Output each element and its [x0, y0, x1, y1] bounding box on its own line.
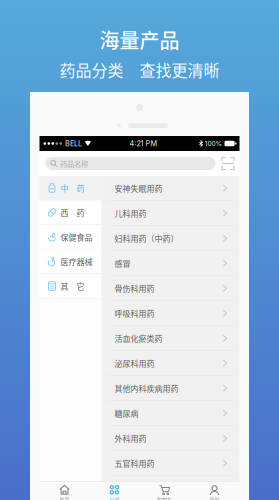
staticText: 活血化瘀类药 — [114, 332, 162, 344]
button[interactable]: 糖尿病 — [101, 401, 239, 425]
staticText: 呼吸科用药 — [114, 307, 154, 319]
button[interactable]: 我的 — [189, 481, 239, 500]
button[interactable]: Scan barcode — [217, 153, 238, 174]
button[interactable]: 安神失眠用药 — [101, 176, 239, 200]
button[interactable]: 西 药 — [39, 200, 101, 224]
staticText: BELL — [65, 139, 82, 148]
button[interactable]: 外科用药 — [101, 426, 239, 450]
staticText: 首页 — [59, 496, 69, 500]
button[interactable]: 首页 — [39, 481, 89, 500]
button[interactable]: 活血化瘀类药 — [101, 326, 239, 350]
staticText: 医疗器械 — [60, 256, 92, 267]
staticText: 药品名称 — [60, 158, 88, 169]
button[interactable]: 五官科用药 — [101, 451, 239, 475]
staticText: 药品分类 查找更清晰 — [59, 58, 219, 81]
staticText: 糖尿病 — [114, 407, 138, 419]
staticText: 购物车 — [157, 496, 172, 500]
staticText: 其他内科疾病用药 — [114, 382, 178, 394]
button[interactable]: 分类 — [89, 481, 139, 500]
staticText: 骨伤科用药 — [114, 282, 154, 294]
staticText: 其 它 — [60, 280, 84, 292]
staticText: 海量产品 — [99, 25, 179, 54]
button[interactable]: 其他内科疾病用药 — [101, 376, 239, 400]
button[interactable]: 呼吸科用药 — [101, 301, 239, 325]
button[interactable]: 骨伤科用药 — [101, 276, 239, 300]
staticText: 儿科用药 — [114, 207, 146, 219]
staticText: 中 药 — [60, 182, 84, 194]
button[interactable]: 保健食品 — [39, 225, 101, 249]
staticText: 五官科用药 — [114, 457, 154, 469]
button[interactable]: 医疗器械 — [39, 249, 101, 273]
staticText: 100% — [204, 139, 222, 148]
staticText: 外科用药 — [114, 432, 146, 444]
staticText: 我的 — [209, 496, 219, 500]
staticText: 保健食品 — [60, 231, 92, 243]
staticText: 安神失眠用药 — [114, 182, 162, 194]
button[interactable]: 其 它 — [39, 274, 101, 298]
button[interactable]: 药品名称 — [45, 157, 215, 170]
button[interactable]: 泌尿科用药 — [101, 351, 239, 375]
button[interactable]: 中 药 — [39, 176, 101, 200]
staticText: 妇科用药（中药） — [114, 232, 178, 244]
staticText: 4:21 PM — [130, 139, 158, 148]
staticText: 分类 — [109, 496, 119, 500]
button[interactable]: 妇科用药（中药） — [101, 226, 239, 250]
button[interactable]: 儿科用药 — [101, 201, 239, 225]
button[interactable]: 感冒 — [101, 251, 239, 275]
staticText: 感冒 — [114, 257, 130, 269]
staticText: 西 药 — [60, 207, 84, 218]
button[interactable]: 购物车 — [139, 481, 189, 500]
staticText: 泌尿科用药 — [114, 357, 154, 369]
